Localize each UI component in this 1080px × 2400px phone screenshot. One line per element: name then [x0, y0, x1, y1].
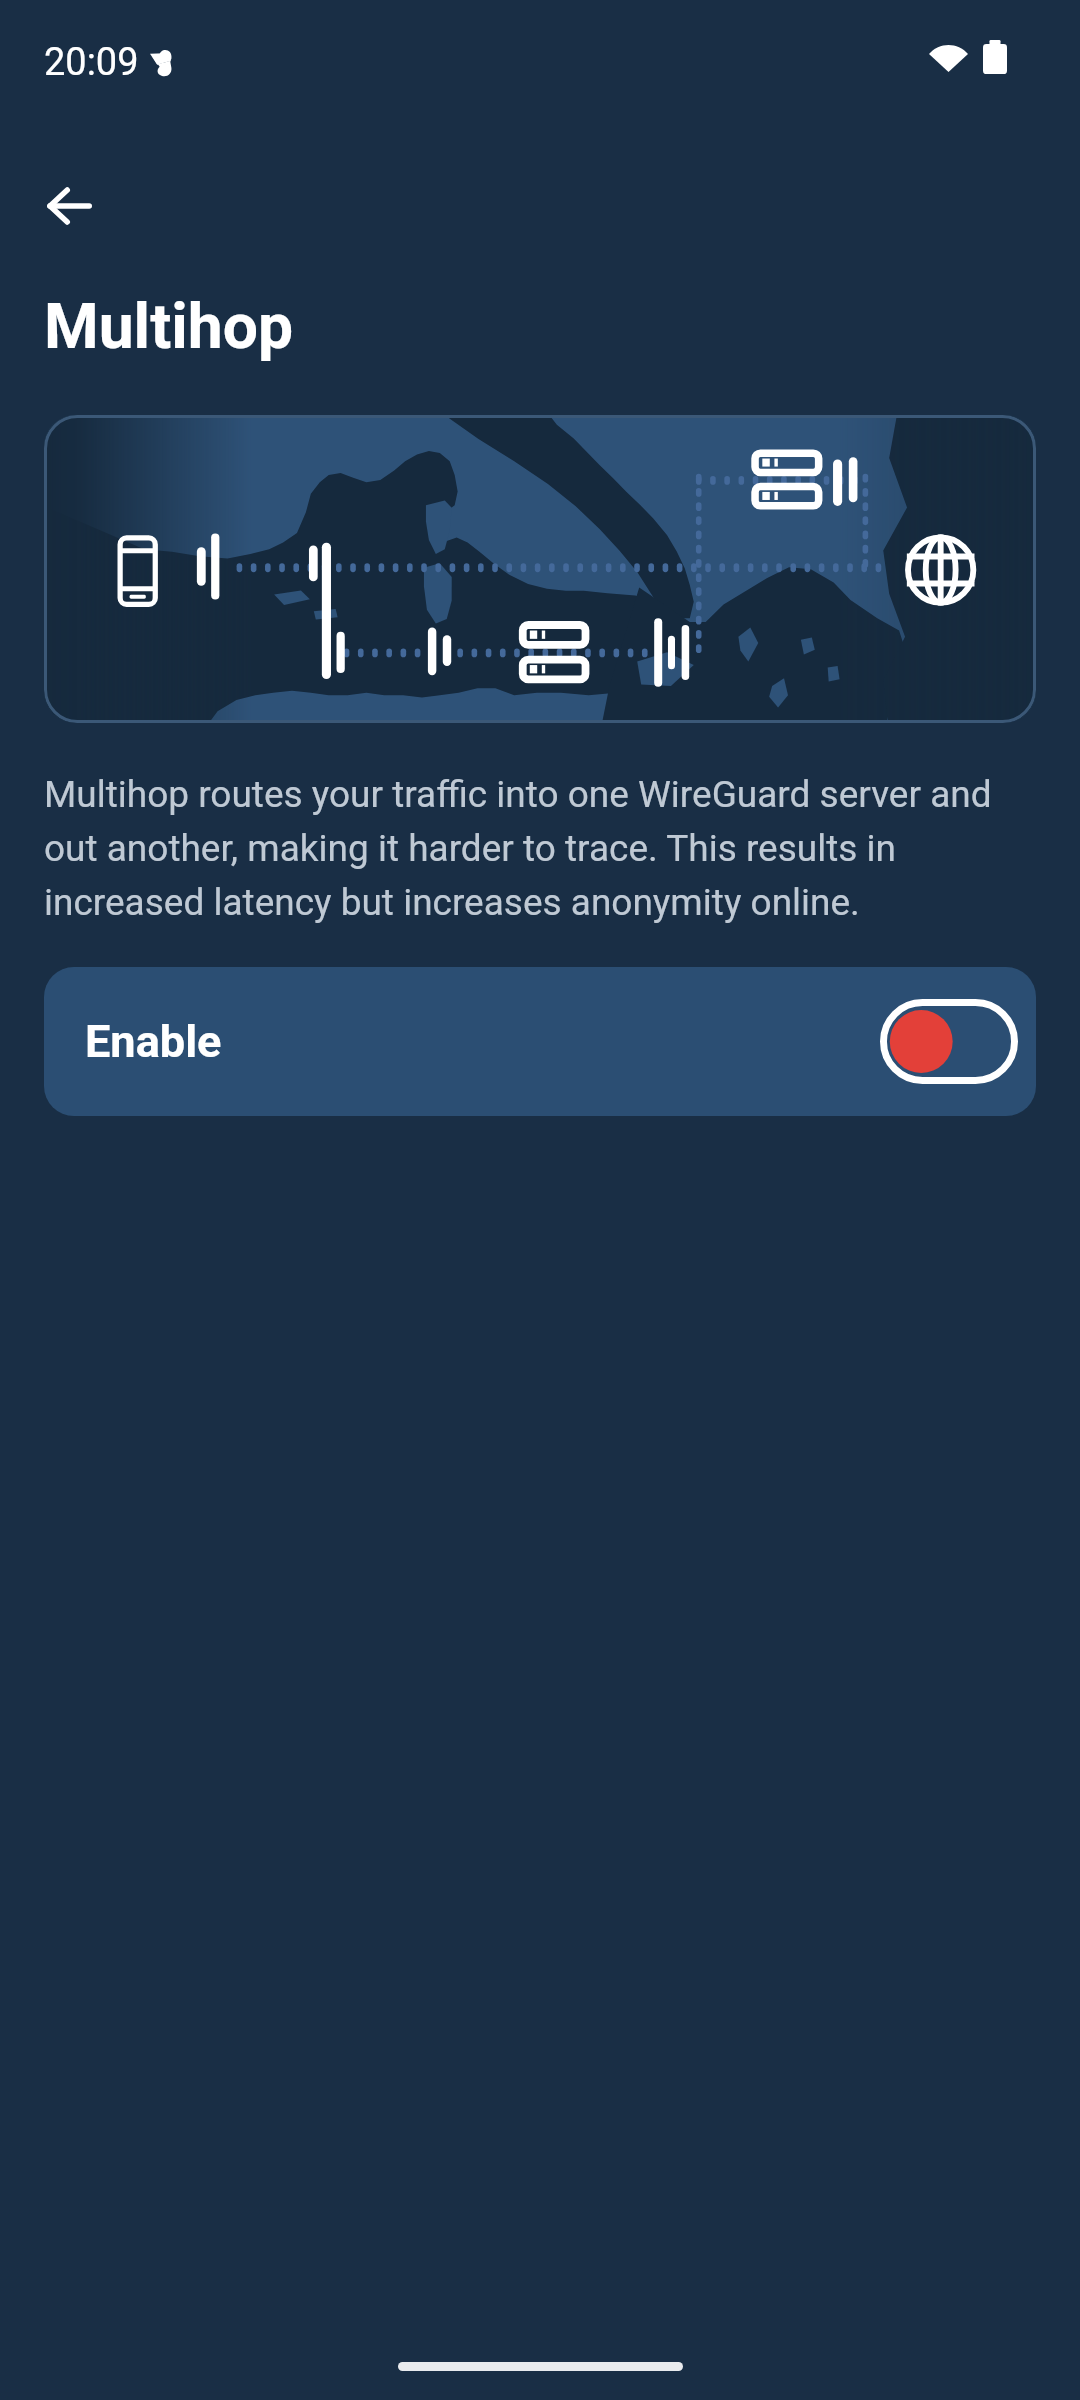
staticText: Multihop routes your traffic into one Wi…: [44, 765, 1039, 927]
button[interactable]: Enable: [44, 967, 1036, 1116]
staticText: 20:09: [44, 36, 139, 86]
staticText: Multihop: [44, 283, 294, 365]
staticText: Enable: [85, 1015, 222, 1068]
button[interactable]: Back: [3, 140, 135, 272]
